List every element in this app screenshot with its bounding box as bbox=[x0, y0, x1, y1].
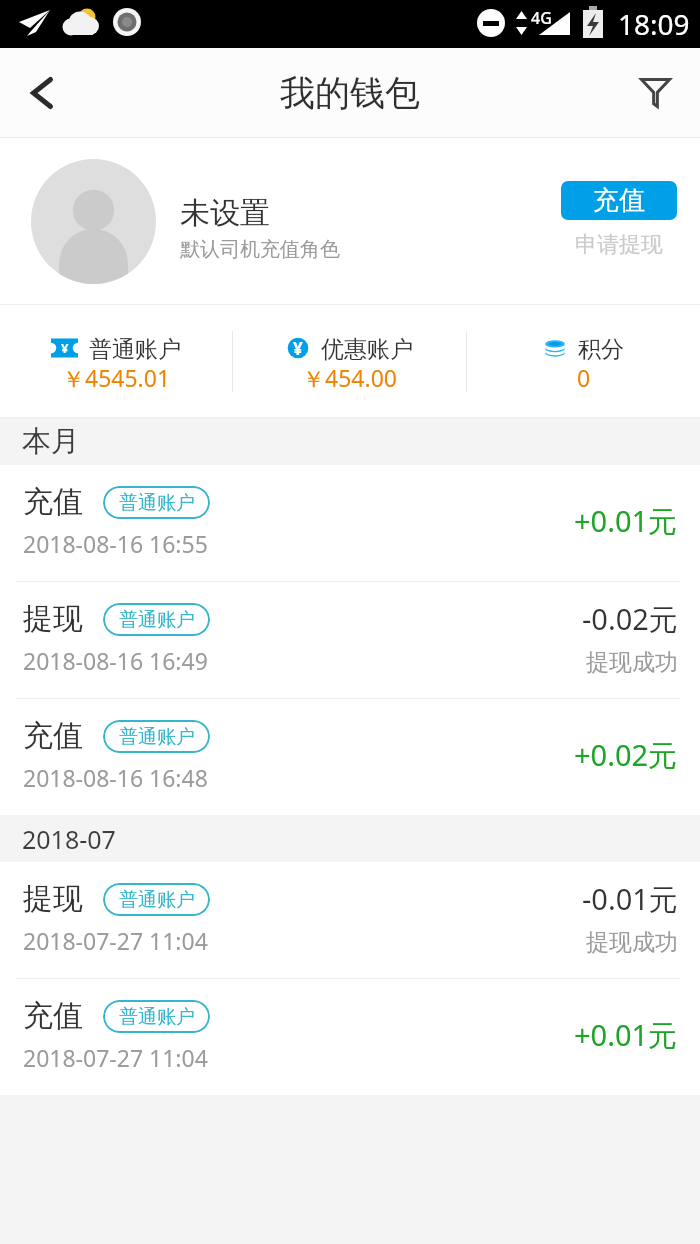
staticText: 普通账户 bbox=[119, 608, 195, 632]
staticText: 本月 bbox=[22, 423, 80, 460]
staticText: ¥ bbox=[293, 337, 303, 360]
staticText: 我的钱包 bbox=[280, 71, 420, 115]
staticText: 普通账户 bbox=[119, 888, 195, 912]
staticText: 充值 bbox=[23, 483, 83, 521]
staticText: 积分 bbox=[578, 335, 624, 361]
staticText: ￥4545.01 bbox=[62, 362, 171, 393]
staticText: 充值 bbox=[23, 717, 83, 755]
staticText: 提现成功 bbox=[586, 648, 678, 677]
button[interactable]: 申请提现 bbox=[569, 227, 669, 263]
staticText: 2018-07 bbox=[22, 822, 116, 856]
staticText: 普通账户 bbox=[119, 725, 195, 749]
staticText: 2018-08-16 16:49 bbox=[23, 645, 208, 676]
staticText: 提现 bbox=[23, 880, 83, 918]
button[interactable]: 充值 bbox=[0, 465, 700, 581]
button[interactable]: 充值 bbox=[561, 181, 677, 220]
button[interactable]: 提现 bbox=[0, 582, 700, 698]
staticText: 未设置 bbox=[180, 194, 270, 232]
staticText: 0 bbox=[577, 362, 591, 393]
button[interactable]: Back bbox=[0, 48, 84, 138]
staticText: 申请提现 bbox=[575, 231, 663, 259]
staticText: 2018-07-27 11:04 bbox=[23, 1042, 208, 1073]
staticText: 2018-08-16 16:55 bbox=[23, 528, 208, 559]
staticText: 2018-07-27 11:04 bbox=[23, 925, 208, 956]
staticText: +0.02元 bbox=[574, 735, 678, 775]
staticText: 提现成功 bbox=[586, 928, 678, 957]
staticText: +0.01元 bbox=[574, 1015, 678, 1055]
button[interactable]: 充值 bbox=[0, 699, 700, 815]
button[interactable]: Filter bbox=[610, 48, 700, 138]
staticText: +0.01元 bbox=[574, 501, 678, 541]
staticText: 普通账户 bbox=[119, 1005, 195, 1029]
staticText: 提现 bbox=[23, 600, 83, 638]
button[interactable]: ¥ bbox=[233, 305, 466, 418]
staticText: 充值 bbox=[593, 184, 645, 217]
staticText: ￥454.00 bbox=[302, 362, 397, 393]
staticText: 2018-08-16 16:48 bbox=[23, 762, 208, 793]
button[interactable]: 积分 bbox=[467, 305, 700, 418]
staticText: 优惠账户 bbox=[321, 335, 413, 361]
staticText: 普通账户 bbox=[89, 335, 181, 361]
button[interactable]: 充值 bbox=[0, 979, 700, 1095]
button[interactable]: 提现 bbox=[0, 862, 700, 978]
staticText: 充值 bbox=[23, 997, 83, 1035]
staticText: 4G bbox=[531, 7, 552, 29]
staticText: 18:09 bbox=[618, 5, 690, 43]
staticText: 普通账户 bbox=[119, 491, 195, 515]
staticText: ¥ bbox=[61, 339, 69, 357]
staticText: -0.01元 bbox=[582, 879, 678, 919]
button[interactable]: ¥ bbox=[0, 305, 232, 418]
staticText: 默认司机充值角色 bbox=[180, 237, 340, 262]
staticText: -0.02元 bbox=[582, 599, 678, 639]
